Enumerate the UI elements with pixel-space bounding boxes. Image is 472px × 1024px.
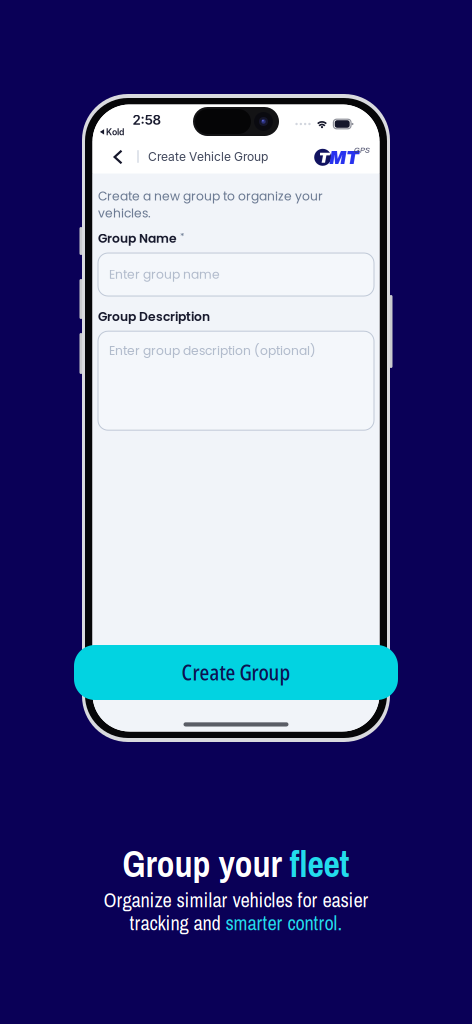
staticText: smarter control. — [225, 909, 342, 937]
staticText: T — [319, 149, 330, 166]
staticText: Group Description — [98, 308, 210, 325]
staticText: Group Name — [98, 230, 177, 247]
staticText: MT — [329, 148, 359, 168]
button[interactable]: Create Group — [74, 645, 398, 700]
staticText: Create a new group to organize your vehi… — [98, 187, 323, 222]
staticText: 2:58 — [132, 112, 161, 128]
staticText: Create Vehicle Group — [148, 149, 268, 164]
staticText: Enter group description (optional) — [109, 342, 316, 359]
button[interactable]: Back — [104, 143, 132, 171]
staticText: Group your — [122, 840, 289, 888]
staticText: tracking and — [129, 909, 225, 937]
staticText: fleet — [289, 840, 349, 888]
staticText: GPS — [354, 146, 370, 154]
button[interactable]: Enter group description (optional) — [98, 331, 374, 430]
staticText: Organize similar vehicles for easier — [103, 886, 368, 914]
staticText: * — [178, 230, 185, 243]
staticText: Kold — [106, 127, 124, 137]
staticText: Enter group name — [109, 266, 220, 283]
button[interactable]: Enter group name — [98, 253, 374, 296]
staticText: Create Group — [181, 658, 290, 686]
